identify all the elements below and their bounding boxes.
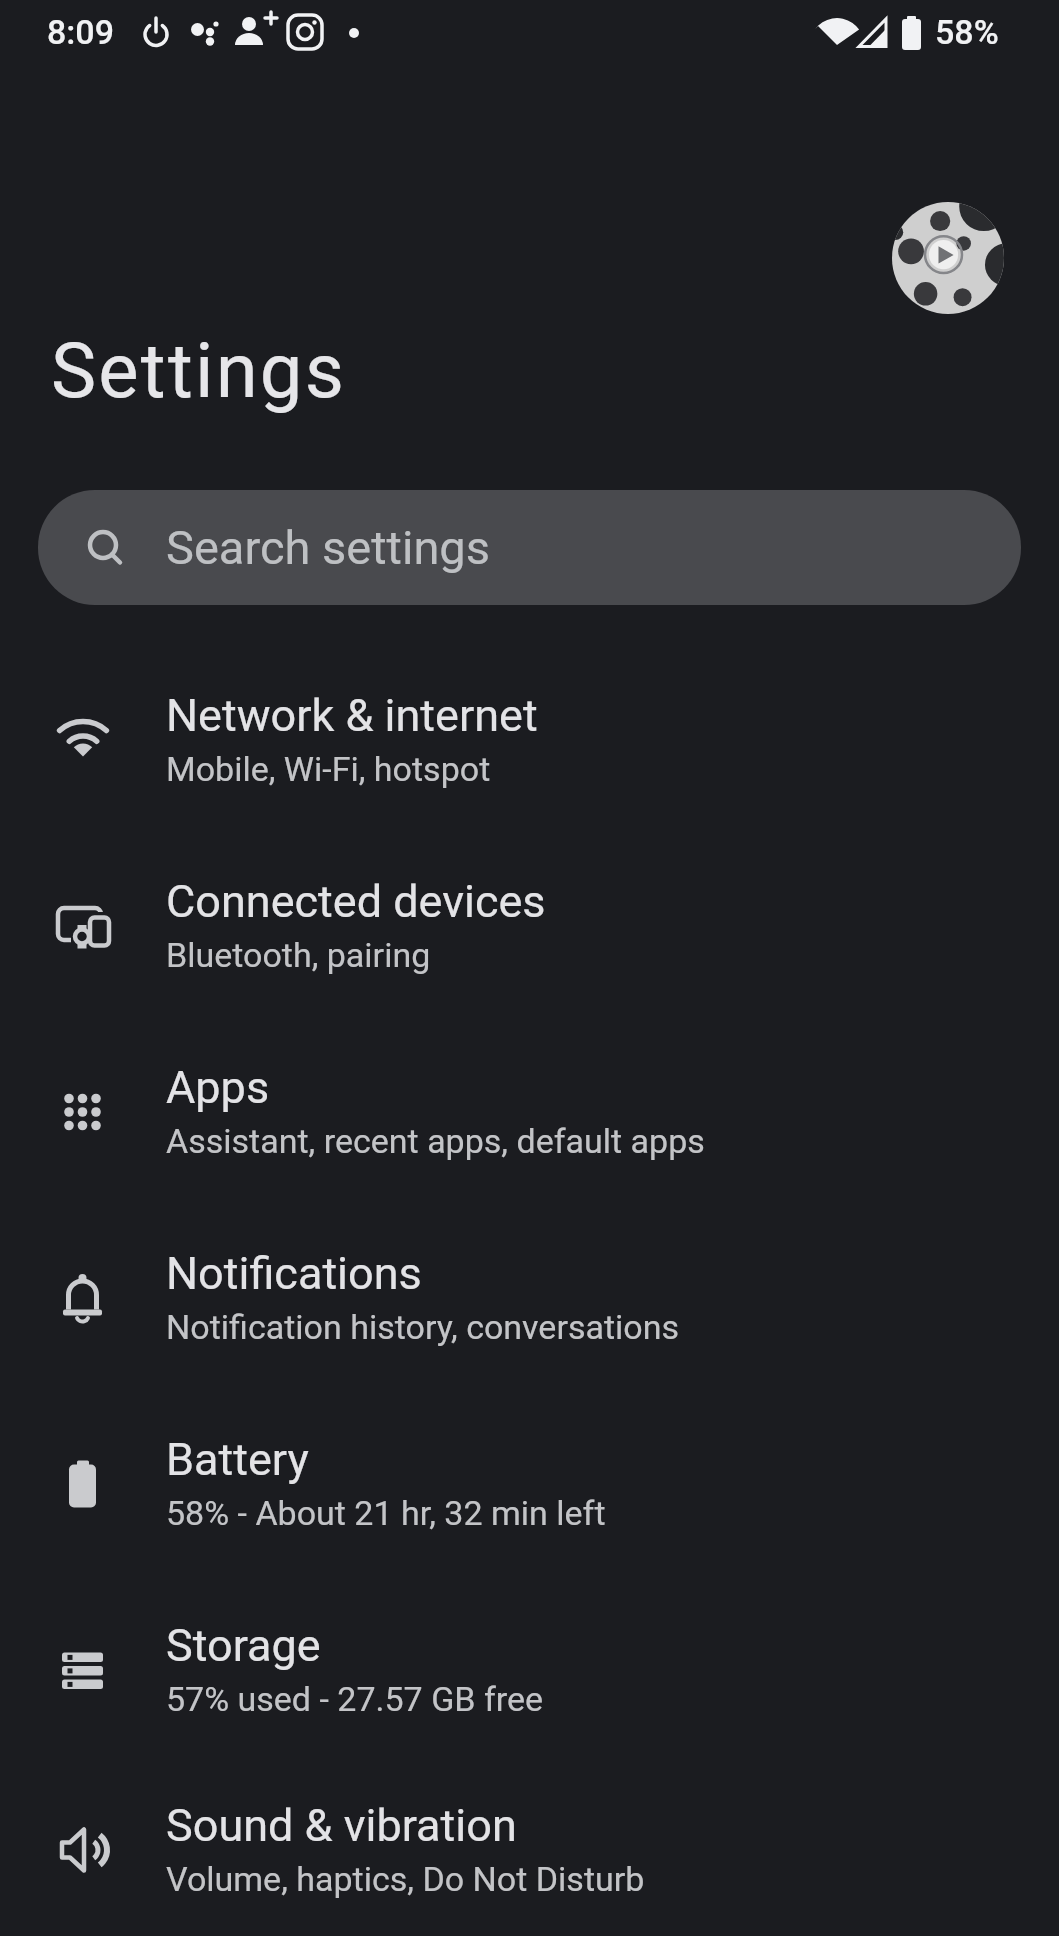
staticText: Connected devices bbox=[166, 875, 546, 928]
button[interactable]: Sound & vibration bbox=[0, 1762, 1059, 1936]
button[interactable]: Search settings bbox=[38, 490, 1021, 605]
staticText: Bluetooth, pairing bbox=[166, 935, 431, 975]
staticText: Assistant, recent apps, default apps bbox=[166, 1121, 705, 1161]
button[interactable]: Connected devices bbox=[0, 832, 1059, 1018]
staticText: Notifications bbox=[166, 1247, 422, 1300]
staticText: Mobile, Wi-Fi, hotspot bbox=[166, 749, 491, 789]
staticText: Volume, haptics, Do Not Disturb bbox=[166, 1859, 645, 1899]
staticText: 58% - About 21 hr, 32 min left bbox=[166, 1493, 606, 1533]
button[interactable]: Notifications bbox=[0, 1204, 1059, 1390]
staticText: Search settings bbox=[166, 520, 490, 575]
staticText: Battery bbox=[166, 1433, 309, 1486]
staticText: 57% used - 27.57 GB free bbox=[166, 1679, 544, 1719]
staticText: Settings bbox=[51, 326, 347, 415]
button[interactable]: Network & internet bbox=[0, 646, 1059, 832]
staticText: Storage bbox=[166, 1619, 321, 1672]
staticText: 58% bbox=[935, 12, 999, 52]
button[interactable]: Storage bbox=[0, 1576, 1059, 1762]
button[interactable]: Apps bbox=[0, 1018, 1059, 1204]
staticText: Apps bbox=[166, 1061, 270, 1114]
staticText: Network & internet bbox=[166, 689, 538, 742]
staticText: Notification history, conversations bbox=[166, 1307, 680, 1347]
staticText: Sound & vibration bbox=[166, 1799, 517, 1852]
staticText: 8:09 bbox=[47, 12, 114, 52]
button[interactable] bbox=[892, 202, 1004, 314]
button[interactable]: Battery bbox=[0, 1390, 1059, 1576]
